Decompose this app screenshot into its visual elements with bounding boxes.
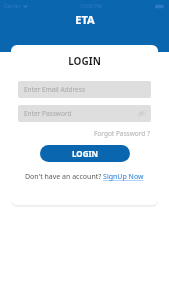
staticText: LOGIN — [11, 54, 158, 68]
staticText: Carrier — [4, 3, 21, 10]
button[interactable]: Don't have an account? SignUp Now — [25, 172, 144, 182]
staticText: Enter Password — [24, 109, 72, 118]
staticText: 10:06 PM — [80, 3, 102, 10]
staticText: Don't have an account? SignUp Now — [25, 172, 144, 182]
staticText: ETA — [75, 12, 95, 27]
button[interactable]: Enter Email Address — [18, 81, 151, 98]
button[interactable]: LOGIN — [40, 145, 130, 162]
staticText: Forgot Password ? — [94, 129, 150, 138]
button[interactable]: Show password — [137, 109, 146, 118]
button[interactable]: Forgot Password ? — [93, 128, 151, 139]
staticText: LOGIN — [72, 148, 99, 159]
button[interactable]: Enter Password — [18, 105, 151, 122]
staticText: Enter Email Address — [24, 85, 85, 94]
